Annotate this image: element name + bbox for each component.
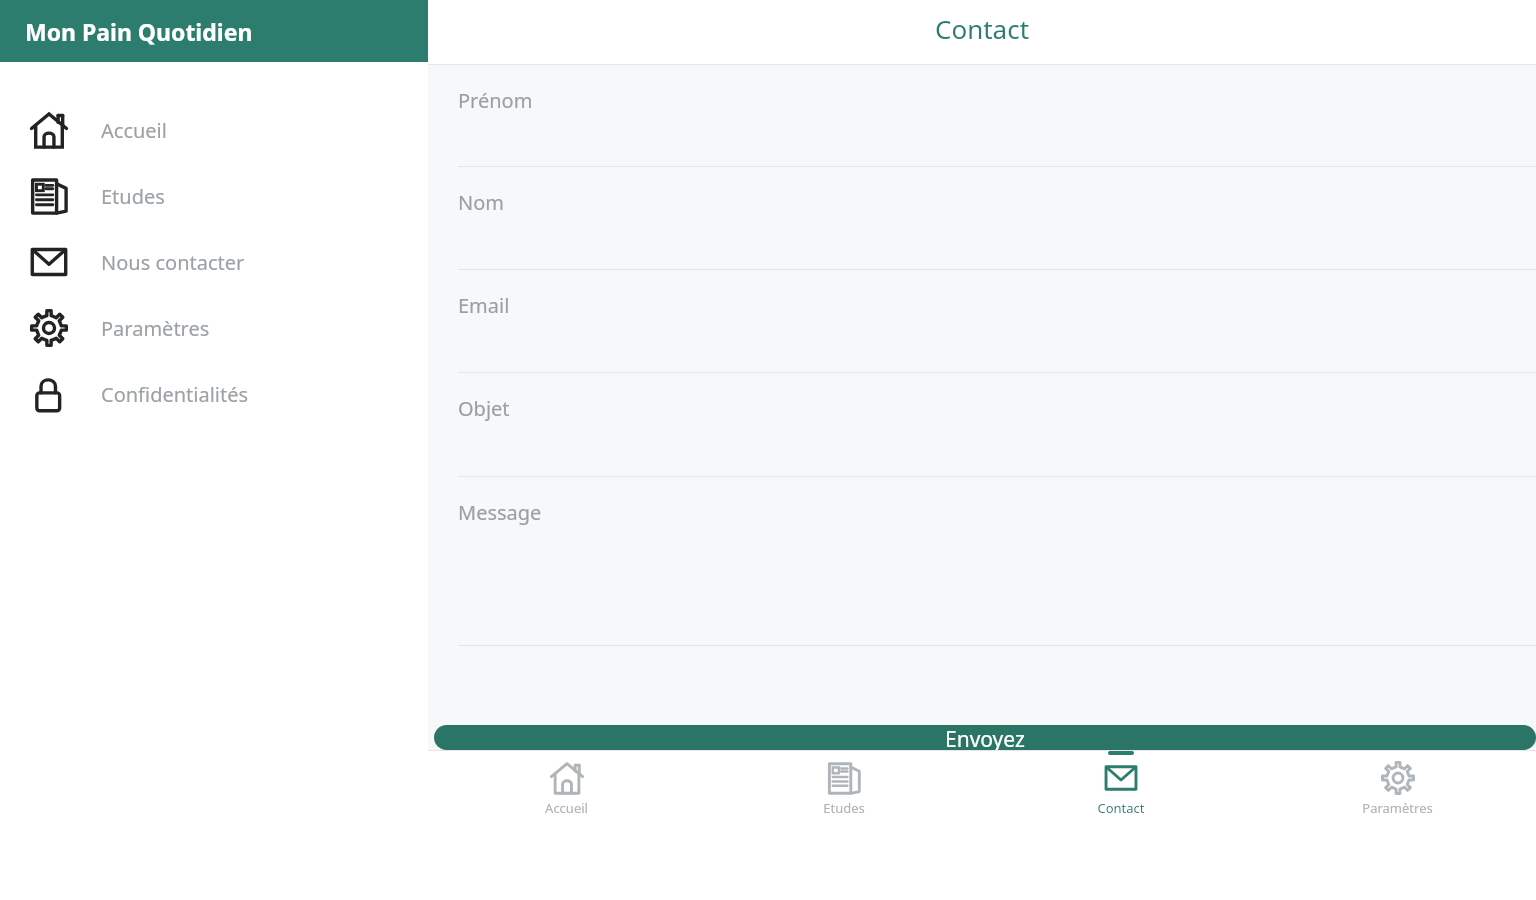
staticText: Prénom xyxy=(458,87,533,114)
button[interactable]: Email xyxy=(428,270,1536,373)
staticText: Email xyxy=(458,292,510,319)
staticText: Paramètres xyxy=(1362,799,1433,817)
staticText: Paramètres xyxy=(101,315,210,342)
button[interactable]: Nom xyxy=(428,167,1536,270)
staticText: Accueil xyxy=(545,799,588,817)
staticText: Nom xyxy=(458,189,504,216)
button[interactable]: Envoyez xyxy=(434,725,1536,750)
staticText: Etudes xyxy=(101,183,165,210)
staticText: Contact xyxy=(1097,799,1145,817)
button[interactable]: Prénom xyxy=(428,65,1536,167)
button[interactable]: Paramètres xyxy=(1259,751,1536,900)
button[interactable]: Etudes xyxy=(0,163,428,229)
staticText: Envoyez xyxy=(945,725,1025,750)
button[interactable]: Paramètres xyxy=(0,295,428,361)
staticText: Accueil xyxy=(101,117,167,144)
staticText: Contact xyxy=(935,11,1030,46)
button[interactable]: Nous contacter xyxy=(0,229,428,295)
button[interactable]: Accueil xyxy=(0,97,428,163)
button[interactable]: Accueil xyxy=(428,751,705,900)
button[interactable]: Contact xyxy=(982,751,1259,900)
staticText: Mon Pain Quotidien xyxy=(25,16,253,47)
staticText: Objet xyxy=(458,395,510,422)
button[interactable]: Confidentialités xyxy=(0,361,428,427)
staticText: Nous contacter xyxy=(101,249,245,276)
button[interactable]: Etudes xyxy=(705,751,982,900)
button[interactable]: Message xyxy=(428,477,1536,646)
button[interactable]: Mon Pain Quotidien xyxy=(0,0,428,62)
button[interactable]: Objet xyxy=(428,373,1536,477)
staticText: Etudes xyxy=(823,799,865,817)
staticText: Confidentialités xyxy=(101,381,249,408)
staticText: Message xyxy=(458,499,542,526)
